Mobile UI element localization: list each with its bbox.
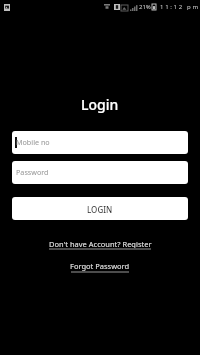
staticText: Password [16,167,49,177]
button[interactable]: Forgot Password [70,261,130,271]
staticText: Don't have Account? Register [49,239,152,249]
staticText: 21% [139,3,151,11]
other: Screenshot captured [4,4,10,11]
staticText: Mobile no [16,137,50,147]
staticText: Login [81,95,119,114]
staticText: 11:12 pm [160,3,200,11]
button[interactable]: Mobile no [12,131,188,154]
button[interactable]: LOGIN [12,197,188,220]
staticText: LOGIN [87,204,113,215]
button[interactable]: Don't have Account? Register [49,239,152,249]
staticText: Forgot Password [70,261,130,271]
button[interactable]: Password [12,161,188,184]
